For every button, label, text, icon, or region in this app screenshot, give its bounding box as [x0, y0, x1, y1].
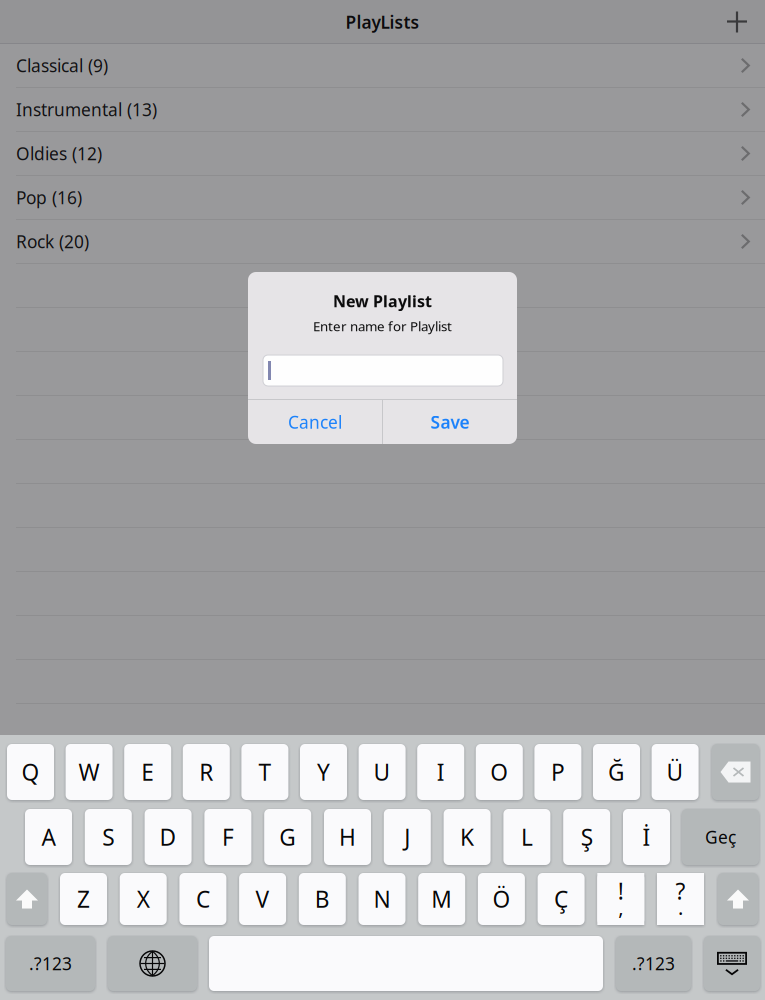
staticText: .?123: [29, 952, 72, 975]
staticText: H: [339, 822, 356, 852]
staticText: B: [315, 884, 330, 914]
button[interactable]: X: [120, 873, 167, 925]
staticText: Save: [430, 410, 469, 433]
button[interactable]: Save: [383, 400, 517, 444]
button[interactable]: U: [359, 744, 406, 800]
button[interactable]: Cancel: [248, 400, 382, 444]
button[interactable]: .?123: [6, 936, 95, 991]
staticText: E: [141, 757, 154, 787]
staticText: PlayLists: [345, 10, 419, 33]
staticText: New Playlist: [333, 290, 432, 312]
button[interactable]: J: [384, 809, 431, 865]
button[interactable]: Rock (20): [0, 220, 765, 264]
staticText: Q: [21, 757, 39, 787]
button[interactable]: T: [241, 744, 288, 800]
staticText: R: [199, 757, 213, 787]
button[interactable]: L: [503, 809, 550, 865]
button[interactable]: E: [124, 744, 171, 800]
staticText: Oldies (12): [16, 142, 102, 165]
button[interactable]: Ş: [563, 809, 610, 865]
staticText: Ş: [581, 822, 593, 852]
button[interactable]: G: [264, 809, 311, 865]
button[interactable]: B: [299, 873, 346, 925]
button[interactable]: A: [25, 809, 72, 865]
button[interactable]: Shift: [7, 873, 47, 925]
button[interactable]: I: [417, 744, 464, 800]
staticText: Enter name for Playlist: [313, 317, 452, 335]
staticText: W: [79, 757, 100, 787]
button[interactable]: Hide keyboard: [704, 936, 760, 991]
staticText: İ: [642, 822, 650, 852]
button[interactable]: Ü: [652, 744, 699, 800]
staticText: V: [256, 884, 270, 914]
staticText: .?123: [632, 952, 675, 975]
button[interactable]: Ç: [538, 873, 585, 925]
button[interactable]: Oldies (12): [0, 132, 765, 176]
staticText: .: [678, 894, 683, 921]
button[interactable]: Shift: [718, 873, 758, 925]
staticText: S: [102, 822, 114, 852]
staticText: Ğ: [608, 757, 625, 787]
button[interactable]: Add playlist: [709, 0, 765, 44]
staticText: Ö: [492, 884, 510, 914]
staticText: J: [404, 822, 410, 852]
button[interactable]: Y: [300, 744, 347, 800]
staticText: K: [460, 822, 474, 852]
button[interactable]: H: [324, 809, 371, 865]
button[interactable]: .?123: [616, 936, 691, 991]
button[interactable]: Pop (16): [0, 176, 765, 220]
staticText: F: [222, 822, 234, 852]
staticText: Ç: [554, 884, 568, 914]
staticText: T: [258, 757, 271, 787]
button[interactable]: Z: [60, 873, 107, 925]
staticText: D: [160, 822, 177, 852]
staticText: L: [521, 822, 533, 852]
staticText: M: [431, 884, 452, 914]
button[interactable]: S: [85, 809, 132, 865]
staticText: G: [279, 822, 296, 852]
button[interactable]: Geç: [682, 809, 759, 865]
staticText: ?: [675, 876, 685, 906]
staticText: Geç: [705, 825, 736, 848]
button[interactable]: O: [476, 744, 523, 800]
staticText: !: [618, 876, 624, 906]
button[interactable]: P: [534, 744, 581, 800]
button[interactable]: ?: [657, 873, 704, 925]
button[interactable]: V: [239, 873, 286, 925]
staticText: O: [490, 757, 508, 787]
staticText: ,: [618, 894, 623, 921]
staticText: P: [551, 757, 565, 787]
button[interactable]: Next keyboard: [108, 936, 197, 991]
button[interactable]: Delete: [712, 744, 759, 800]
staticText: N: [373, 884, 390, 914]
staticText: A: [41, 822, 55, 852]
staticText: Y: [317, 757, 330, 787]
staticText: Instrumental (13): [16, 98, 157, 121]
staticText: Classical (9): [16, 54, 108, 77]
button[interactable]: Ğ: [593, 744, 640, 800]
button[interactable]: F: [204, 809, 251, 865]
button[interactable]: C: [179, 873, 226, 925]
button[interactable]: M: [418, 873, 465, 925]
staticText: X: [137, 884, 150, 914]
button[interactable]: N: [358, 873, 405, 925]
staticText: Z: [77, 884, 90, 914]
button[interactable]: Instrumental (13): [0, 88, 765, 132]
button[interactable]: Q: [7, 744, 54, 800]
button[interactable]: W: [66, 744, 113, 800]
button[interactable]: R: [183, 744, 230, 800]
staticText: Pop (16): [16, 186, 82, 209]
button[interactable]: D: [145, 809, 192, 865]
staticText: C: [196, 884, 210, 914]
button[interactable]: Ö: [478, 873, 525, 925]
button[interactable]: Classical (9): [0, 44, 765, 88]
staticText: U: [374, 757, 391, 787]
button[interactable]: K: [444, 809, 491, 865]
staticText: Ü: [667, 757, 684, 787]
staticText: I: [437, 757, 445, 787]
staticText: Rock (20): [16, 230, 89, 253]
staticText: Cancel: [288, 410, 342, 433]
button[interactable]: İ: [623, 809, 670, 865]
button[interactable]: !: [597, 873, 644, 925]
